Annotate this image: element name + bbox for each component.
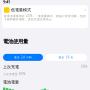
staticText: 電池使用量 [3,38,28,45]
staticText: 過去 24 小時 [14,56,32,59]
staticText: 58% [81,65,87,68]
button[interactable]: 過去 10 天 [45,54,87,61]
button[interactable]: 過去 24 小時 [3,54,43,61]
staticText: 9:41 [3,0,10,4]
staticText: 電池電量 [3,80,19,85]
staticText: 過去 10 天 [58,56,73,59]
staticText: 低電量模式 [11,8,31,12]
button[interactable]: 低電量模式 [0,5,90,28]
staticText: 當電池電量低於 20%，「低電量模式」會減少背景活動，包括下載和郵件擷取，直到完… [4,14,86,21]
staticText: 上次充電至 80% [3,72,25,76]
staticText: ✕ [84,8,86,11]
staticText: 上次充電 [3,64,19,69]
